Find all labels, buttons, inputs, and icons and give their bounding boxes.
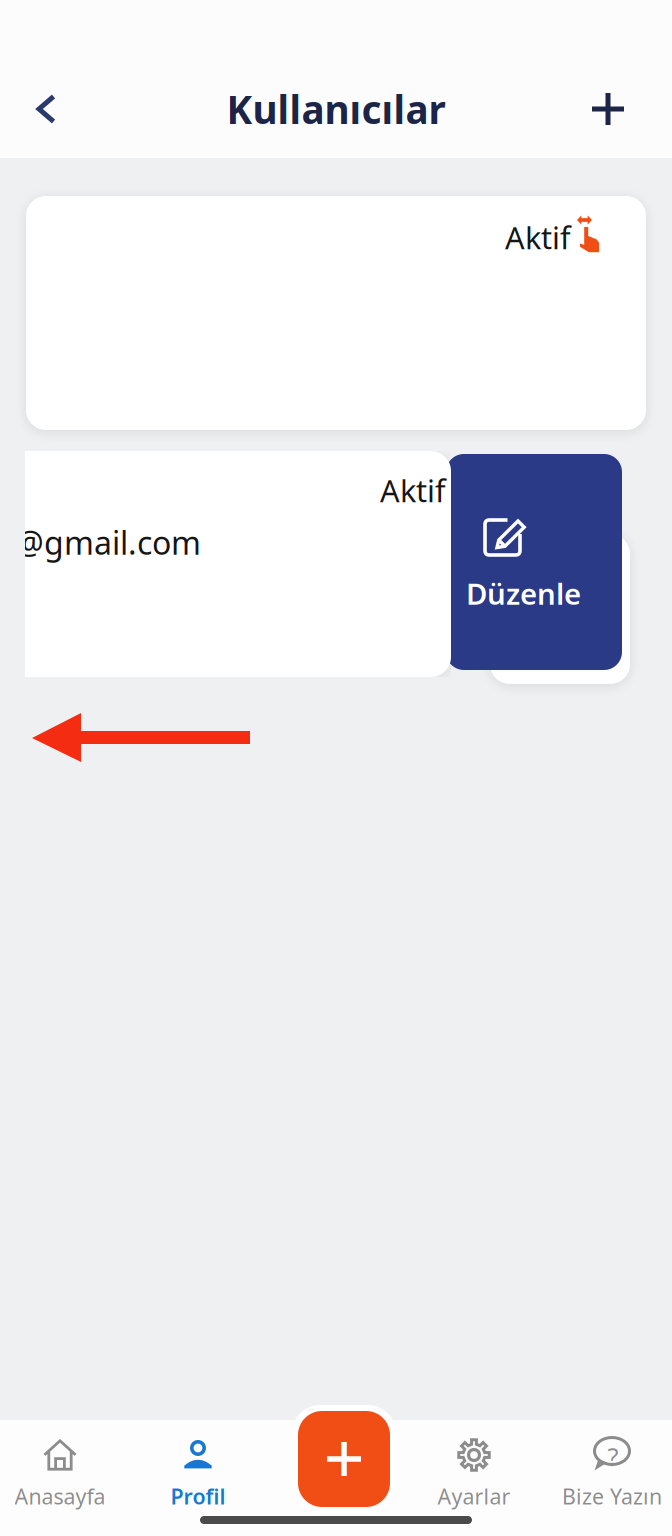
staticText: Profil — [170, 1482, 225, 1510]
button[interactable]: Add user — [576, 77, 640, 141]
staticText: Aktif — [505, 217, 571, 258]
button[interactable]: Aktif — [26, 196, 646, 430]
staticText: ? — [607, 1439, 618, 1473]
staticText: Bize Yazın — [562, 1482, 662, 1510]
staticText: kullanici@gmail.com — [0, 521, 201, 563]
button[interactable]: Aktif — [25, 451, 451, 677]
staticText: Kullanıcılar — [226, 83, 445, 135]
button[interactable]: Back — [14, 77, 78, 141]
button[interactable]: ? — [549, 1420, 672, 1524]
button[interactable]: Profil — [135, 1420, 261, 1524]
button[interactable]: Add — [289, 1402, 399, 1516]
staticText: Anasayfa — [14, 1482, 105, 1510]
staticText: Aktif — [380, 470, 446, 511]
staticText: Düzenle — [466, 574, 581, 613]
staticText: Ayarlar — [437, 1482, 510, 1510]
button[interactable]: Anasayfa — [0, 1420, 123, 1524]
button[interactable]: Düzenle — [446, 454, 622, 670]
button[interactable]: Ayarlar — [411, 1420, 537, 1524]
